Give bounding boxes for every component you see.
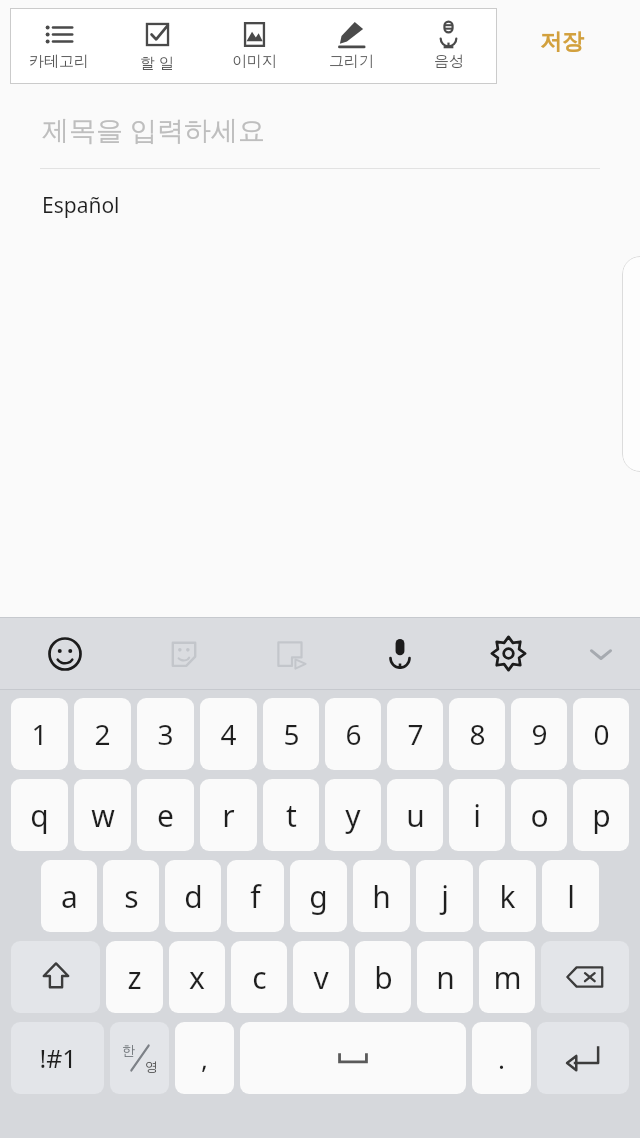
- staticText: b: [374, 957, 393, 998]
- button[interactable]: 9: [511, 698, 567, 770]
- button[interactable]: t: [263, 779, 319, 851]
- button[interactable]: 그리기: [303, 8, 400, 84]
- staticText: 이미지: [232, 52, 277, 71]
- staticText: 할 일: [140, 52, 174, 72]
- staticText: 3: [157, 715, 174, 753]
- button[interactable]: k: [479, 860, 536, 932]
- button[interactable]: ,: [175, 1022, 234, 1094]
- button[interactable]: o: [511, 779, 567, 851]
- staticText: 5: [283, 715, 300, 753]
- button[interactable]: z: [106, 941, 163, 1013]
- staticText: 그리기: [329, 52, 374, 71]
- button[interactable]: x: [169, 941, 225, 1013]
- staticText: l: [567, 876, 575, 917]
- button[interactable]: 5: [263, 698, 319, 770]
- staticText: d: [184, 876, 203, 917]
- button[interactable]: l: [542, 860, 599, 932]
- staticText: m: [493, 957, 522, 998]
- staticText: u: [406, 795, 425, 836]
- button[interactable]: q: [11, 779, 68, 851]
- button[interactable]: 저장: [528, 20, 596, 64]
- button[interactable]: 이미지: [206, 8, 303, 84]
- staticText: h: [372, 876, 391, 917]
- button[interactable]: !#1: [11, 1022, 104, 1094]
- button[interactable]: d: [165, 860, 221, 932]
- staticText: p: [592, 795, 611, 836]
- button[interactable]: j: [416, 860, 473, 932]
- staticText: f: [250, 876, 261, 917]
- button[interactable]: 6: [325, 698, 381, 770]
- staticText: !#1: [39, 1041, 77, 1075]
- button[interactable]: 8: [449, 698, 505, 770]
- staticText: i: [473, 795, 481, 836]
- staticText: 카테고리: [29, 52, 89, 71]
- button[interactable]: 3: [137, 698, 194, 770]
- button[interactable]: 카테고리: [10, 8, 108, 84]
- staticText: a: [61, 876, 78, 917]
- button[interactable]: Emoji: [0, 617, 130, 690]
- staticText: 4: [220, 715, 237, 753]
- button[interactable]: 7: [387, 698, 443, 770]
- button[interactable]: Shift: [11, 941, 100, 1013]
- staticText: e: [157, 795, 174, 836]
- staticText: .: [498, 1041, 505, 1076]
- button[interactable]: v: [293, 941, 349, 1013]
- button[interactable]: Hide keyboard: [562, 617, 640, 690]
- button[interactable]: Korean English toggle: [110, 1022, 169, 1094]
- button[interactable]: e: [137, 779, 194, 851]
- button[interactable]: b: [355, 941, 411, 1013]
- button[interactable]: 2: [74, 698, 131, 770]
- button[interactable]: Enter: [537, 1022, 629, 1094]
- staticText: 2: [94, 715, 111, 753]
- button[interactable]: 할 일: [108, 8, 206, 84]
- button[interactable]: g: [290, 860, 347, 932]
- button[interactable]: a: [41, 860, 97, 932]
- staticText: z: [127, 957, 142, 998]
- button[interactable]: p: [573, 779, 629, 851]
- button[interactable]: y: [325, 779, 381, 851]
- staticText: o: [530, 795, 549, 836]
- button[interactable]: 0: [573, 698, 629, 770]
- button[interactable]: 1: [11, 698, 68, 770]
- staticText: g: [309, 876, 328, 917]
- staticText: t: [286, 795, 297, 836]
- button[interactable]: Space: [240, 1022, 466, 1094]
- button[interactable]: s: [103, 860, 159, 932]
- staticText: 6: [345, 715, 362, 753]
- staticText: n: [436, 957, 455, 998]
- staticText: 음성: [434, 52, 464, 71]
- staticText: k: [499, 876, 516, 917]
- button[interactable]: Settings: [454, 617, 562, 690]
- staticText: j: [441, 876, 449, 917]
- staticText: r: [222, 795, 235, 836]
- staticText: ,: [201, 1041, 208, 1076]
- button[interactable]: 음성: [400, 8, 497, 84]
- staticText: 제목을 입력하세요: [42, 111, 266, 148]
- staticText: Español: [42, 191, 120, 220]
- staticText: 한: [122, 1042, 135, 1058]
- staticText: 7: [407, 715, 424, 753]
- staticText: 1: [31, 715, 48, 753]
- button[interactable]: Backspace: [541, 941, 629, 1013]
- staticText: w: [91, 795, 115, 836]
- button[interactable]: w: [74, 779, 131, 851]
- staticText: 9: [531, 715, 548, 753]
- button[interactable]: r: [200, 779, 257, 851]
- button[interactable]: 4: [200, 698, 257, 770]
- button[interactable]: Voice input: [346, 617, 454, 690]
- button[interactable]: u: [387, 779, 443, 851]
- button[interactable]: n: [417, 941, 473, 1013]
- staticText: q: [30, 795, 49, 836]
- button[interactable]: .: [472, 1022, 531, 1094]
- button[interactable]: GIF: [238, 617, 346, 690]
- staticText: 0: [593, 715, 610, 753]
- button[interactable]: m: [479, 941, 535, 1013]
- staticText: 8: [469, 715, 486, 753]
- staticText: 저장: [540, 28, 584, 56]
- button[interactable]: c: [231, 941, 287, 1013]
- button[interactable]: f: [227, 860, 284, 932]
- button[interactable]: Stickers: [130, 617, 238, 690]
- staticText: x: [189, 957, 205, 998]
- button[interactable]: h: [353, 860, 410, 932]
- button[interactable]: i: [449, 779, 505, 851]
